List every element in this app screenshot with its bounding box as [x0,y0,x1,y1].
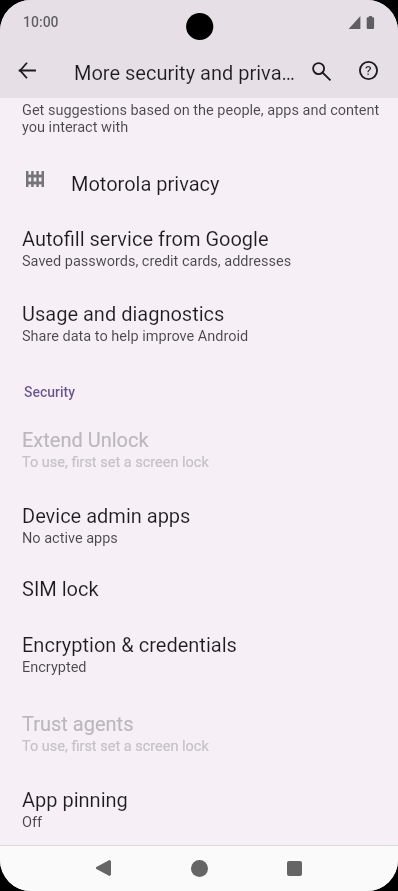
button[interactable]: Encryption & credentials [0,616,398,692]
staticText: Off [22,814,43,831]
staticText: Share data to help improve Android [22,328,249,345]
button[interactable]: App pinning [0,771,398,847]
button[interactable]: Search [302,52,338,88]
staticText: 10:00 [23,14,59,30]
button[interactable]: Help [350,52,386,88]
staticText: Encrypted [22,659,87,676]
staticText: To use, first set a screen lock [22,454,209,471]
staticText: No active apps [22,530,118,547]
staticText: Trust agents [22,712,134,735]
button[interactable]: Usage and diagnostics [0,285,398,361]
staticText: More security and priva… [74,61,295,84]
staticText: SIM lock [22,577,99,600]
staticText: Security [24,384,76,400]
button[interactable]: Navigate up [9,52,45,88]
staticText: Device admin apps [22,504,191,527]
staticText: ? [365,62,372,78]
staticText: To use, first set a screen lock [22,738,209,755]
button[interactable]: Trust agents [0,695,398,771]
button[interactable]: Device admin apps [0,487,398,563]
staticText: Extend Unlock [22,428,149,451]
button[interactable]: SIM lock [0,560,398,616]
button[interactable]: Autofill service from Google [0,210,398,286]
staticText: Saved passwords, credit cards, addresses [22,253,292,270]
staticText: Autofill service from Google [22,227,269,250]
staticText: Encryption & credentials [22,633,237,656]
button[interactable]: Get suggestions based on the people, app… [0,98,398,142]
staticText: Motorola privacy [71,172,220,195]
staticText: Get suggestions based on the people, app… [22,102,384,135]
staticText: Usage and diagnostics [22,302,225,325]
button[interactable]: Home [175,845,223,891]
button[interactable]: Motorola privacy [0,155,398,211]
staticText: App pinning [22,788,128,811]
button[interactable]: Back [79,845,127,891]
button[interactable]: Recent apps [270,845,318,891]
button[interactable]: Extend Unlock [0,411,398,487]
